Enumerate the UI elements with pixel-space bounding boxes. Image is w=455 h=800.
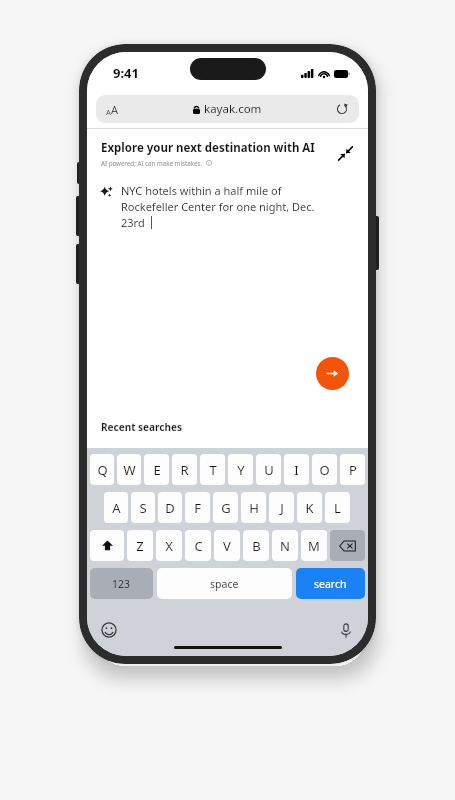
staticText: G xyxy=(221,499,231,517)
staticText: M xyxy=(308,537,320,555)
button[interactable]: space xyxy=(157,568,292,599)
staticText: K xyxy=(305,499,314,517)
button[interactable]: X xyxy=(156,530,182,561)
staticText: R xyxy=(180,461,189,479)
staticText: T xyxy=(209,461,217,479)
staticText: N xyxy=(280,537,290,555)
button[interactable]: O xyxy=(312,454,337,485)
staticText: Explore your next destination with AI xyxy=(101,140,315,156)
button[interactable]: H xyxy=(241,492,266,523)
staticText: A xyxy=(106,107,111,117)
staticText: D xyxy=(165,499,175,517)
button[interactable]: Dictation xyxy=(336,620,356,640)
button[interactable]: L xyxy=(325,492,350,523)
button[interactable]: V xyxy=(214,530,240,561)
staticText: S xyxy=(139,499,147,517)
button[interactable]: R xyxy=(172,454,197,485)
staticText: search xyxy=(314,577,347,591)
button[interactable]: P xyxy=(340,454,365,485)
staticText: Y xyxy=(237,461,245,479)
button[interactable]: U xyxy=(256,454,281,485)
staticText: Z xyxy=(136,537,144,555)
staticText: Q xyxy=(97,461,108,479)
staticText: NYC hotels within a half mile of Rockefe… xyxy=(121,183,315,230)
staticText: 9:41 xyxy=(113,64,139,82)
staticText: B xyxy=(252,537,261,555)
staticText: O xyxy=(319,461,330,479)
staticText: X xyxy=(165,537,173,555)
button[interactable]: Q xyxy=(90,454,114,485)
staticText: P xyxy=(349,461,357,479)
staticText: L xyxy=(334,499,341,517)
button[interactable]: J xyxy=(269,492,294,523)
staticText: kayak.com xyxy=(204,101,262,117)
staticText: A xyxy=(111,102,119,117)
button[interactable]: Collapse panel xyxy=(332,140,358,166)
button[interactable]: C xyxy=(185,530,211,561)
button[interactable]: G xyxy=(213,492,238,523)
staticText: 123 xyxy=(112,577,131,591)
button[interactable]: N xyxy=(272,530,298,561)
staticText: E xyxy=(153,461,161,479)
button[interactable]: Text size options xyxy=(96,95,359,123)
button[interactable]: Y xyxy=(228,454,253,485)
button[interactable]: T xyxy=(200,454,225,485)
button[interactable]: Text size options xyxy=(106,102,119,117)
button[interactable]: S xyxy=(131,492,155,523)
button[interactable]: Shift xyxy=(90,530,124,561)
button[interactable]: Search with AI xyxy=(316,357,349,390)
button[interactable]: B xyxy=(243,530,269,561)
staticText: J xyxy=(280,499,284,517)
staticText: Recent searches xyxy=(101,420,182,434)
button[interactable]: K xyxy=(297,492,322,523)
staticText: AI powered; AI can make mistakes. xyxy=(101,159,203,167)
staticText: V xyxy=(223,537,231,555)
button[interactable]: Recent searches xyxy=(101,420,182,434)
staticText: I xyxy=(294,461,299,479)
staticText: W xyxy=(123,461,136,479)
button[interactable]: E xyxy=(144,454,169,485)
staticText: F xyxy=(194,499,201,517)
button[interactable]: Backspace xyxy=(330,530,365,561)
staticText: C xyxy=(194,537,203,555)
staticText: A xyxy=(112,499,121,517)
button[interactable]: Reload page xyxy=(336,103,348,115)
staticText: space xyxy=(210,577,239,591)
button[interactable]: M xyxy=(301,530,327,561)
button[interactable]: search xyxy=(296,568,365,599)
button[interactable]: A xyxy=(104,492,128,523)
button[interactable]: W xyxy=(117,454,141,485)
button[interactable]: 123 xyxy=(90,568,153,599)
button[interactable]: Emoji keyboard xyxy=(99,620,119,640)
button[interactable]: I xyxy=(284,454,309,485)
button[interactable]: F xyxy=(185,492,210,523)
staticText: U xyxy=(264,461,274,479)
staticText: H xyxy=(249,499,259,517)
button[interactable]: D xyxy=(158,492,182,523)
button[interactable]: Z xyxy=(127,530,153,561)
